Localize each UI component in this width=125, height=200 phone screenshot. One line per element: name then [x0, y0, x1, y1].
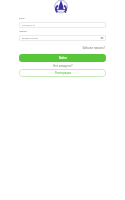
button[interactable]: Забыли пароль?	[81, 45, 106, 50]
button[interactable]: Войти	[19, 54, 106, 62]
staticText: Регистрация	[55, 71, 71, 75]
staticText: Пароль	[19, 30, 27, 33]
staticText: Войти	[59, 56, 67, 60]
staticText: Забыли пароль?	[82, 46, 105, 49]
staticText: Введите пароль	[22, 37, 39, 40]
staticText: Email	[19, 17, 25, 20]
other: University logo	[54, 1, 68, 13]
button[interactable]: Регистрация	[19, 69, 106, 77]
staticText: mail@mail.ru	[22, 24, 36, 27]
staticText: Нет аккаунта?	[53, 64, 73, 68]
button[interactable]: Введите пароль	[19, 35, 106, 41]
button[interactable]: mail@mail.ru	[19, 22, 106, 28]
button[interactable]: Show password	[100, 36, 104, 40]
